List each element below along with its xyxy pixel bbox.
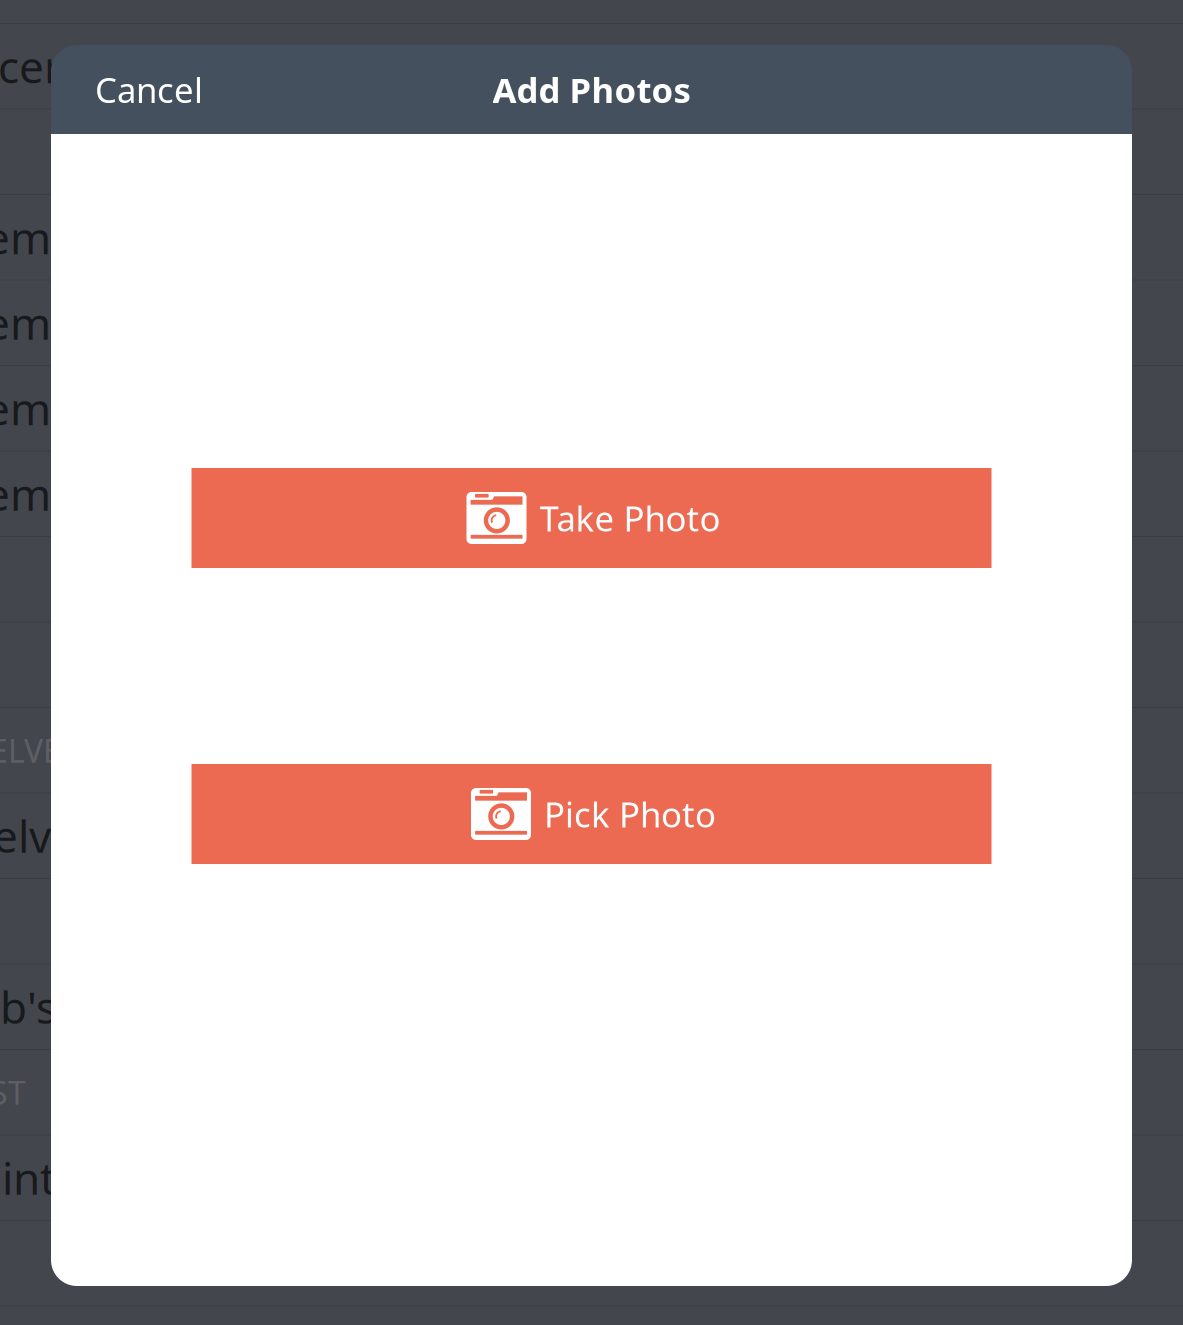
button[interactable]: LIST (0, 1050, 1183, 1135)
button[interactable]: Item (0, 451, 1183, 537)
staticText: Bob's Tools (0, 977, 175, 1036)
staticText: Grocery Store (0, 37, 204, 95)
button[interactable] (0, 109, 1183, 195)
button[interactable] (0, 879, 1183, 964)
staticText: Item (0, 464, 51, 523)
button[interactable]: Item 3 (0, 280, 1183, 366)
staticText: SHELVES (0, 729, 79, 771)
staticText: Take Photo (539, 495, 720, 541)
staticText: Pick Photo (544, 791, 716, 837)
staticText: Paint (0, 1148, 56, 1207)
button[interactable] (0, 622, 1183, 708)
button[interactable]: Item 1 (0, 366, 1183, 451)
button[interactable]: Take Photo (191, 468, 991, 568)
staticText: Add Photos (492, 66, 690, 112)
staticText: Item 3 (0, 293, 87, 352)
button[interactable]: Paint (0, 1135, 1183, 1221)
staticText: Shelves (0, 806, 97, 865)
staticText: LIST (0, 1071, 26, 1113)
staticText: Item 1 (0, 379, 87, 437)
button[interactable]: Pick Photo (191, 764, 991, 864)
button[interactable]: Item 2 (0, 195, 1183, 280)
button[interactable] (0, 1221, 1183, 1306)
button[interactable] (0, 537, 1183, 622)
button[interactable]: Bob's Tools (0, 964, 1183, 1050)
button[interactable]: Cancel (51, 45, 315, 134)
button[interactable]: Grocery Store (0, 24, 1183, 109)
button[interactable]: Shelves (0, 793, 1183, 879)
staticText: Item 2 (0, 208, 87, 266)
staticText: Cancel (95, 66, 203, 112)
button[interactable]: SHELVES (0, 708, 1183, 793)
